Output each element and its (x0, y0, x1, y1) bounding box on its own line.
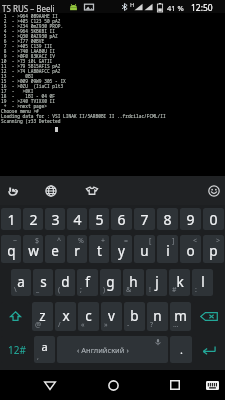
button[interactable]: x (55, 302, 76, 331)
staticText: p (209, 242, 218, 260)
staticText: m (174, 307, 187, 325)
staticText: q (7, 242, 16, 260)
staticText: 3 (51, 210, 60, 229)
button[interactable]: l (192, 269, 213, 296)
button[interactable]: 3 (45, 208, 65, 230)
staticText: j (155, 273, 159, 291)
button[interactable]: 1 (1, 208, 21, 230)
button[interactable]: h (123, 269, 144, 296)
button[interactable]: 6 (111, 208, 132, 230)
button[interactable]: c (78, 302, 99, 331)
button[interactable]: Theme (82, 176, 102, 205)
staticText: o (186, 242, 195, 260)
button[interactable]: d (55, 269, 75, 296)
staticText: f (85, 273, 90, 291)
staticText: u (140, 242, 149, 260)
staticText: i (166, 242, 170, 260)
button[interactable]: a (11, 269, 31, 296)
staticText: t (97, 242, 102, 260)
staticText: ( (58, 285, 61, 295)
staticText: ~ (13, 236, 18, 246)
staticText: « (81, 320, 85, 330)
staticText: ; (80, 285, 82, 295)
button[interactable]: ‹ Английский › (57, 336, 168, 363)
staticText: s (40, 273, 47, 291)
staticText: b (130, 307, 139, 325)
staticText: 4 (73, 210, 82, 229)
button[interactable]: i (157, 235, 178, 263)
button[interactable]: 4 (67, 208, 87, 230)
staticText: y (118, 242, 125, 260)
button[interactable]: o (180, 235, 201, 263)
staticText: ] (172, 236, 175, 246)
staticText: k (176, 273, 184, 291)
button[interactable]: m (170, 302, 191, 331)
staticText: 2 (29, 210, 38, 229)
button[interactable]: z (32, 302, 53, 331)
button[interactable]: y (111, 235, 132, 263)
button[interactable]: f (77, 269, 98, 296)
button[interactable]: 0 (203, 208, 224, 230)
staticText: _ (36, 285, 40, 295)
button[interactable]: a (34, 336, 55, 363)
staticText: » (104, 320, 108, 330)
button[interactable]: r (67, 235, 87, 263)
button[interactable]: 2 (23, 208, 43, 230)
staticText: , (37, 352, 39, 362)
staticText: 8 (163, 210, 172, 229)
button[interactable]: p (203, 235, 224, 263)
button[interactable]: 8 (157, 208, 178, 230)
staticText: < (193, 236, 198, 246)
staticText: 12:50 (191, 2, 213, 14)
staticText: TS RUS – Beeli (2, 3, 55, 14)
staticText: @ (35, 320, 42, 330)
staticText: h (129, 273, 138, 291)
staticText: 6 (117, 210, 126, 229)
button[interactable]: Switch keyboard (202, 373, 222, 397)
button[interactable]: j (146, 269, 167, 296)
staticText: # (172, 285, 177, 295)
staticText: l (201, 273, 205, 291)
staticText: . (180, 342, 183, 357)
button[interactable]: v (101, 302, 122, 331)
staticText: \ (14, 285, 17, 295)
staticText: g (106, 273, 115, 291)
staticText: e (51, 242, 59, 260)
button[interactable]: Back (38, 373, 62, 397)
staticText: & (126, 285, 132, 295)
staticText: v (108, 307, 115, 325)
button[interactable]: Enter (194, 336, 224, 363)
staticText: 0 (209, 210, 218, 229)
staticText: x (62, 307, 70, 325)
button[interactable]: g (100, 269, 121, 296)
button[interactable]: q (1, 235, 21, 263)
button[interactable]: 7 (134, 208, 155, 230)
button[interactable]: t (89, 235, 109, 263)
staticText: c (85, 307, 92, 325)
button[interactable]: b (124, 302, 145, 331)
button[interactable]: Emoji (204, 176, 224, 205)
button[interactable]: 12# (1, 336, 32, 363)
button[interactable]: . (170, 336, 192, 363)
button[interactable]: Clipboard (4, 176, 24, 205)
staticText: 41 % (167, 3, 184, 13)
button[interactable]: 9 (180, 208, 201, 230)
button[interactable]: Shift (1, 302, 30, 331)
staticText: ‹ Английский › (77, 345, 129, 355)
button[interactable]: n (147, 302, 168, 331)
button[interactable]: s (33, 269, 53, 296)
button[interactable]: u (134, 235, 155, 263)
button[interactable]: Backspace (193, 302, 224, 331)
button[interactable]: w (23, 235, 43, 263)
button[interactable]: 5 (89, 208, 109, 230)
staticText: w (28, 242, 39, 260)
staticText: $ (35, 236, 40, 246)
button[interactable]: Language (41, 176, 61, 205)
button[interactable]: Recents (163, 373, 187, 397)
staticText: n (153, 307, 162, 325)
button[interactable]: Home (101, 373, 125, 397)
staticText: - (127, 320, 130, 330)
staticText: > (216, 236, 221, 246)
button[interactable]: e (45, 235, 65, 263)
button[interactable]: k (169, 269, 190, 296)
